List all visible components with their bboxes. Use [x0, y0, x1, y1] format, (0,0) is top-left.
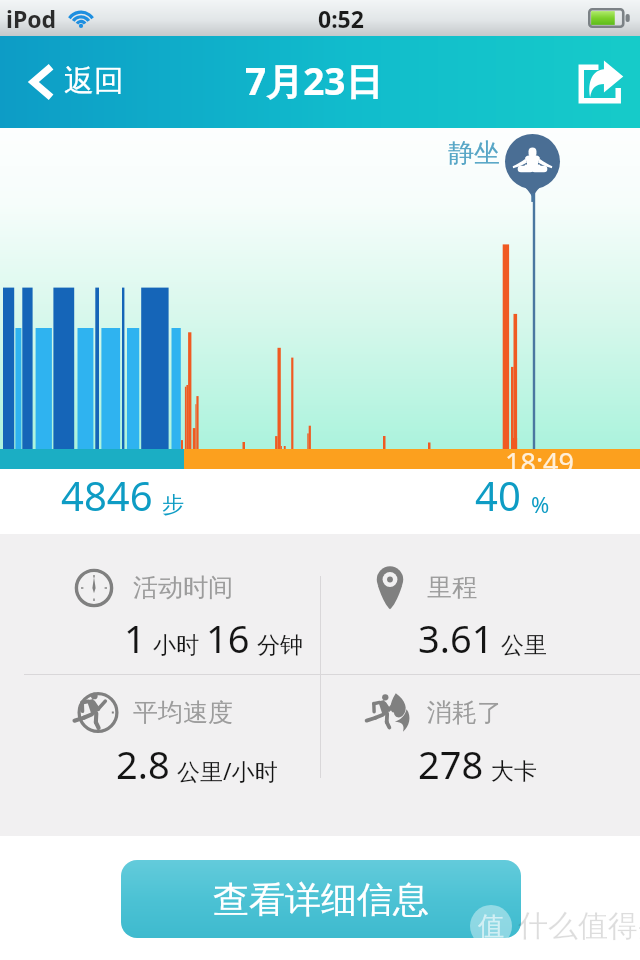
staticText: 活动时间: [133, 572, 233, 603]
staticText: 3.61: [418, 612, 494, 664]
staticText: 40: [475, 468, 521, 522]
button[interactable]: 活动时间: [0, 534, 320, 673]
staticText: 公里/小时: [177, 755, 278, 786]
button[interactable]: 返回: [18, 52, 144, 112]
staticText: 查看详细信息: [213, 877, 429, 922]
button[interactable]: 平均速度: [0, 674, 320, 836]
button[interactable]: 查看详细信息: [121, 860, 521, 938]
staticText: 278: [418, 738, 484, 790]
staticText: 2.8: [116, 738, 170, 790]
staticText: 4846: [61, 468, 153, 522]
staticText: 公里: [501, 631, 547, 660]
staticText: 0:52: [318, 3, 364, 34]
staticText: 什么值得买: [518, 907, 640, 945]
staticText: 7月23日: [245, 55, 383, 106]
staticText: 值: [478, 910, 504, 943]
staticText: 1: [124, 612, 146, 664]
staticText: 分钟: [257, 631, 303, 660]
staticText: 返回: [64, 62, 124, 100]
staticText: iPod: [6, 3, 57, 34]
staticText: 消耗了: [427, 697, 502, 728]
staticText: 静坐: [448, 137, 500, 170]
staticText: 18:49: [505, 444, 575, 481]
staticText: 小时: [153, 631, 199, 660]
button[interactable]: 里程: [320, 534, 640, 673]
button[interactable]: Share: [564, 45, 638, 119]
button[interactable]: 消耗了: [320, 674, 640, 836]
staticText: %: [531, 489, 550, 519]
staticText: 里程: [427, 572, 477, 603]
staticText: 16: [206, 612, 250, 664]
staticText: 大卡: [491, 757, 537, 786]
staticText: 平均速度: [133, 697, 233, 728]
staticText: 步: [162, 491, 184, 519]
